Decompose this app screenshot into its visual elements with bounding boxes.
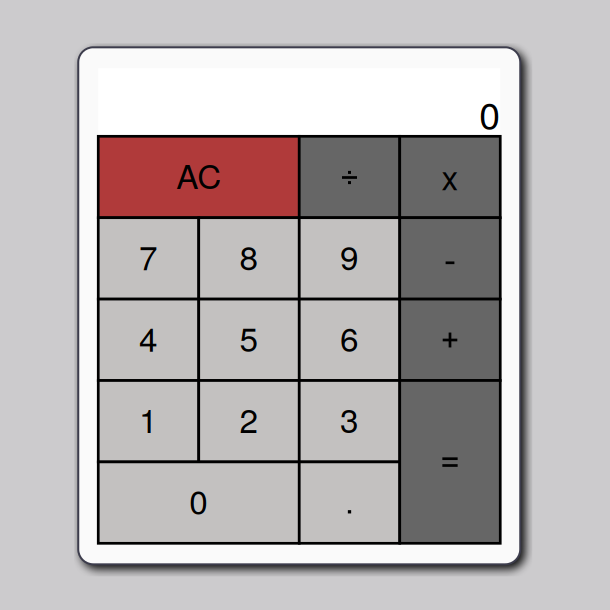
button[interactable]: 3 [299,380,400,462]
button[interactable]: 1 [98,380,199,462]
button[interactable]: 8 [199,218,299,299]
button[interactable]: AC [98,136,299,218]
button[interactable]: 0 [98,462,299,543]
staticText: 9 [340,232,359,280]
staticText: 0 [479,87,500,140]
button[interactable]: 5 [199,299,299,380]
button[interactable]: Equals [400,380,500,543]
button[interactable]: 2 [199,380,299,462]
staticText: AC [176,151,221,198]
staticText: 8 [239,232,258,280]
staticText: 1 [139,395,158,442]
staticText: x [441,152,458,200]
staticText: 3 [340,395,359,442]
staticText: 6 [340,313,359,361]
button[interactable]: 7 [98,218,199,299]
button[interactable]: 4 [98,299,199,380]
button[interactable]: Minus [400,218,500,299]
button[interactable]: Decimal point [299,462,400,543]
button[interactable]: 6 [299,299,400,380]
button[interactable]: Plus [400,299,500,380]
staticText: 0 [189,476,208,524]
button[interactable]: Divide [299,136,400,218]
staticText: 7 [139,232,158,280]
staticText: 2 [239,395,258,442]
button[interactable]: 9 [299,218,400,299]
staticText: 4 [139,313,158,361]
staticText: 5 [239,313,258,361]
button[interactable]: x [400,136,500,218]
